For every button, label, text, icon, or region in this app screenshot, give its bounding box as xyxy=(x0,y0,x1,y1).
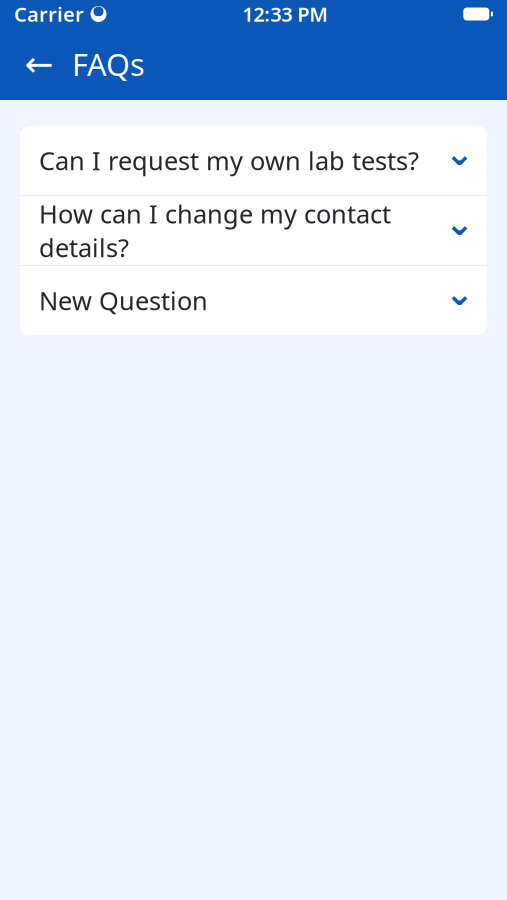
staticText: How can I change my contact details? xyxy=(39,197,391,264)
staticText: FAQs xyxy=(72,44,145,84)
staticText: Can I request my own lab tests? xyxy=(39,144,419,177)
button[interactable]: How can I change my contact details? xyxy=(20,196,487,265)
staticText: ⌄ xyxy=(445,204,474,243)
staticText: Carrier xyxy=(14,1,84,27)
staticText: ← xyxy=(24,44,53,84)
staticText: ⌄ xyxy=(445,134,474,173)
staticText: New Question xyxy=(39,284,208,317)
staticText: 12:33 PM xyxy=(242,1,328,27)
staticText: ⌄ xyxy=(445,274,474,313)
button[interactable]: Back xyxy=(22,47,56,81)
button[interactable]: Can I request my own lab tests? xyxy=(20,126,487,195)
button[interactable]: New Question xyxy=(20,266,487,335)
